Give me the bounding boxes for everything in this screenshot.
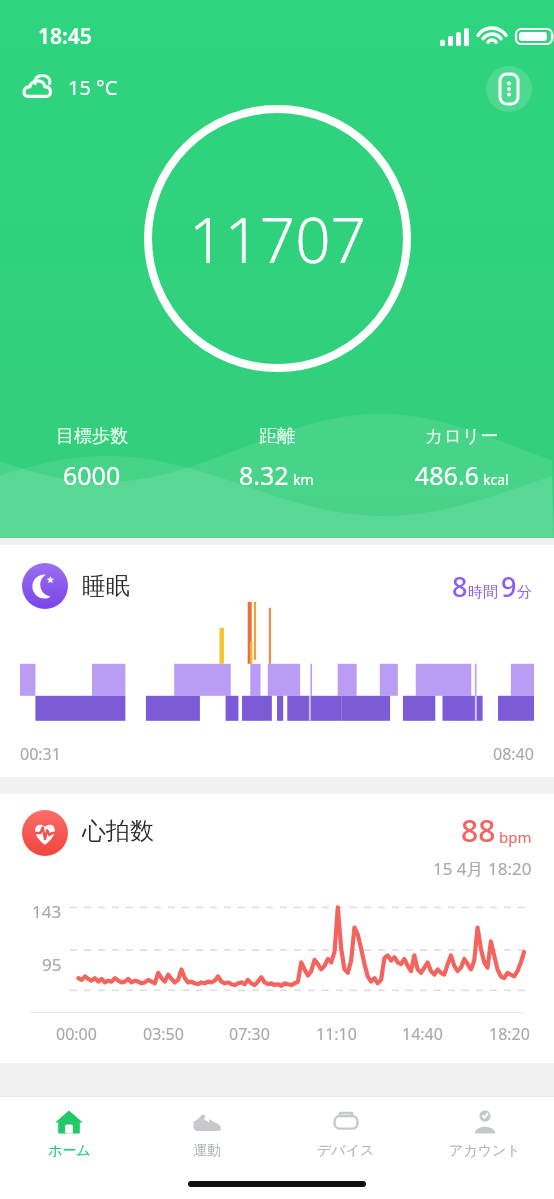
- staticText: 00:31: [20, 743, 61, 765]
- staticText: 486.6: [415, 458, 479, 492]
- staticText: アカウント: [449, 1142, 521, 1160]
- staticText: 時間: [468, 583, 498, 602]
- staticText: 07:30: [229, 1023, 270, 1045]
- button[interactable]: Device: [486, 66, 532, 112]
- staticText: 08:40: [493, 743, 534, 765]
- staticText: 14:40: [402, 1023, 443, 1045]
- staticText: 18:45: [38, 22, 92, 51]
- staticText: 8: [452, 568, 468, 605]
- button[interactable]: ホーム: [0, 1097, 138, 1169]
- staticText: 15 4月 18:20: [433, 857, 532, 880]
- staticText: kcal: [483, 470, 509, 489]
- staticText: 6000: [63, 458, 121, 492]
- button[interactable]: 睡眠: [0, 545, 554, 777]
- staticText: 目標歩数: [56, 425, 128, 448]
- staticText: 11:10: [316, 1023, 357, 1045]
- staticText: 00:00: [56, 1023, 97, 1045]
- staticText: 143: [32, 900, 62, 923]
- staticText: カロリー: [425, 425, 499, 448]
- staticText: 03:50: [143, 1023, 184, 1045]
- button[interactable]: 運動: [138, 1097, 276, 1169]
- staticText: 分: [517, 583, 532, 602]
- staticText: 8.32: [239, 458, 289, 492]
- button[interactable]: 心拍数: [0, 794, 554, 1063]
- staticText: km: [293, 470, 314, 489]
- staticText: 95: [42, 953, 62, 976]
- staticText: 15 °C: [68, 74, 118, 101]
- staticText: 睡眠: [82, 571, 130, 601]
- staticText: 運動: [193, 1142, 221, 1160]
- button[interactable]: デバイス: [276, 1097, 415, 1169]
- staticText: 心拍数: [82, 816, 154, 846]
- staticText: 9: [501, 568, 517, 605]
- button[interactable]: 距離: [184, 425, 369, 492]
- staticText: 11707: [189, 197, 367, 281]
- button[interactable]: 目標歩数: [0, 425, 184, 492]
- button[interactable]: 11707: [144, 105, 411, 372]
- staticText: 距離: [259, 425, 295, 448]
- staticText: ホーム: [48, 1142, 91, 1160]
- staticText: 88: [461, 810, 496, 851]
- staticText: bpm: [499, 827, 532, 847]
- button[interactable]: アカウント: [415, 1097, 554, 1169]
- button[interactable]: カロリー: [369, 425, 554, 492]
- staticText: 18:20: [489, 1023, 530, 1045]
- staticText: デバイス: [317, 1142, 375, 1160]
